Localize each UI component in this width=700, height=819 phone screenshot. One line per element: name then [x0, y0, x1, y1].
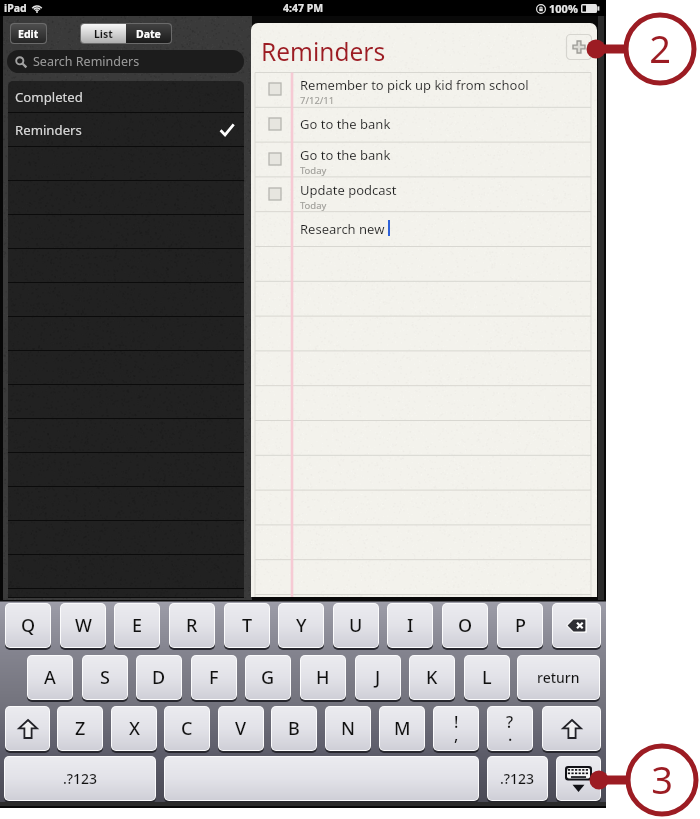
button[interactable]: Shift	[543, 707, 600, 750]
staticText: 2	[630, 22, 690, 74]
staticText: .?123	[500, 769, 535, 788]
button[interactable]	[8, 555, 244, 589]
button[interactable]: Edit	[11, 24, 46, 43]
button[interactable]: A	[28, 656, 72, 699]
button[interactable]: L	[465, 656, 509, 699]
staticText: N	[341, 716, 355, 741]
staticText: Q	[21, 613, 36, 638]
button[interactable]	[8, 249, 244, 283]
staticText: Search Reminders	[33, 53, 140, 70]
button[interactable]	[8, 147, 244, 181]
button[interactable]: Go to the bank	[251, 108, 597, 143]
staticText: H	[316, 665, 330, 690]
button[interactable]: X	[112, 707, 156, 750]
button[interactable]	[8, 351, 244, 385]
staticText: Go to the bank	[300, 146, 391, 164]
staticText: !	[454, 711, 459, 733]
staticText: S	[100, 665, 110, 690]
staticText: Z	[75, 716, 86, 741]
button[interactable]: K	[410, 656, 454, 699]
staticText: Completed	[15, 88, 83, 106]
button[interactable]: Remember to pick up kid from school	[251, 73, 597, 108]
button[interactable]	[8, 317, 244, 351]
button[interactable]: Date	[126, 24, 171, 43]
button[interactable]	[8, 487, 244, 521]
staticText: .	[508, 724, 513, 746]
staticText: B	[288, 716, 300, 741]
button[interactable]: B	[272, 707, 316, 750]
button[interactable]	[8, 521, 244, 555]
button[interactable]: U	[334, 604, 378, 647]
button[interactable]: Delete	[553, 604, 600, 647]
staticText: Edit	[18, 27, 39, 41]
button[interactable]	[8, 385, 244, 419]
button[interactable]: Go to the bank	[251, 143, 597, 178]
button[interactable]: Search Reminders	[7, 50, 244, 73]
button[interactable]: return	[518, 656, 599, 699]
staticText: Today	[300, 164, 327, 177]
button[interactable]: W	[61, 604, 105, 647]
staticText: Go to the bank	[300, 115, 391, 133]
button[interactable]: S	[83, 656, 127, 699]
button[interactable]: O	[443, 604, 487, 647]
button[interactable]: H	[301, 656, 345, 699]
button[interactable]: Shift	[6, 707, 49, 750]
staticText: W	[75, 613, 92, 638]
button[interactable]: Completed	[8, 81, 244, 113]
button[interactable]: Space	[165, 757, 478, 800]
button[interactable]	[8, 181, 244, 215]
staticText: Reminders	[15, 121, 82, 139]
button[interactable]: Hide keyboard	[557, 757, 600, 800]
button[interactable]: ?	[488, 707, 532, 750]
button[interactable]: D	[137, 656, 181, 699]
staticText: Remember to pick up kid from school	[300, 76, 529, 94]
staticText: 7/12/11	[300, 94, 335, 107]
staticText: I	[407, 613, 414, 638]
staticText: Update podcast	[300, 181, 397, 199]
staticText: D	[152, 665, 166, 690]
staticText: Y	[296, 613, 307, 638]
button[interactable]: Research new	[251, 213, 597, 248]
button[interactable]	[8, 453, 244, 487]
button[interactable]: .?123	[5, 757, 155, 800]
staticText: iPad	[4, 1, 27, 15]
staticText: F	[209, 665, 219, 690]
button[interactable]: N	[326, 707, 370, 750]
button[interactable]: J	[356, 656, 400, 699]
staticText: C	[181, 716, 193, 741]
staticText: Research new	[300, 220, 385, 238]
button[interactable]: Reminders	[8, 113, 244, 147]
button[interactable]	[8, 215, 244, 249]
staticText: 3	[632, 753, 692, 805]
staticText: J	[375, 665, 381, 690]
staticText: L	[482, 665, 492, 690]
button[interactable]	[8, 589, 244, 598]
button[interactable]: P	[498, 604, 542, 647]
button[interactable]: Q	[6, 604, 50, 647]
button[interactable]: V	[219, 707, 263, 750]
staticText: T	[242, 613, 253, 638]
button[interactable]: !	[434, 707, 478, 750]
staticText: E	[132, 613, 143, 638]
button[interactable]: List	[81, 24, 126, 43]
staticText: G	[261, 665, 275, 690]
button[interactable]: Update podcast	[251, 178, 597, 213]
button[interactable]: M	[380, 707, 424, 750]
button[interactable]: E	[115, 604, 159, 647]
button[interactable]	[8, 283, 244, 317]
staticText: return	[537, 668, 580, 687]
button[interactable]: I	[388, 604, 432, 647]
staticText: Today	[300, 199, 327, 212]
button[interactable]: R	[170, 604, 214, 647]
button[interactable]: Y	[279, 604, 323, 647]
staticText: Reminders	[261, 35, 386, 68]
button[interactable]: G	[246, 656, 290, 699]
button[interactable]: Z	[58, 707, 102, 750]
button[interactable]: F	[192, 656, 236, 699]
button[interactable]: Add reminder	[566, 34, 592, 60]
button[interactable]: T	[225, 604, 269, 647]
staticText: List	[94, 27, 113, 41]
button[interactable]	[8, 419, 244, 453]
button[interactable]: C	[165, 707, 209, 750]
button[interactable]: .?123	[488, 757, 547, 800]
